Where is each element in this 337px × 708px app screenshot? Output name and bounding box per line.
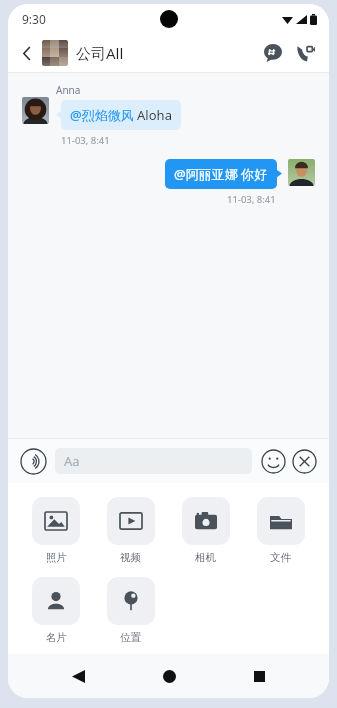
staticText: Anna <box>56 83 81 97</box>
button[interactable]: 相机 <box>177 497 234 564</box>
staticText: 公司All <box>76 43 124 63</box>
staticText: @阿丽亚娜 你好 <box>174 165 268 183</box>
button[interactable]: 位置 <box>102 577 159 644</box>
button[interactable]: Emoji <box>261 449 286 474</box>
button[interactable]: Aa <box>55 448 252 474</box>
staticText: 名片 <box>46 631 67 644</box>
staticText: Aa <box>64 452 80 470</box>
button[interactable]: Home <box>149 656 189 696</box>
staticText: 相机 <box>195 551 216 564</box>
button[interactable]: Close panel <box>292 449 317 474</box>
staticText: @烈焰微风 Aloha <box>70 106 172 124</box>
button[interactable]: 照片 <box>28 497 84 564</box>
staticText: 11-03, 8:41 <box>227 193 276 206</box>
staticText: 位置 <box>120 631 141 644</box>
staticText: 照片 <box>46 551 67 564</box>
button[interactable]: Recent apps <box>239 656 279 696</box>
staticText: 文件 <box>270 551 291 564</box>
button[interactable]: Channels <box>257 37 289 69</box>
button[interactable]: Back <box>58 656 98 696</box>
staticText: 11-03, 8:41 <box>61 134 110 147</box>
button[interactable]: Back <box>12 38 42 68</box>
button[interactable]: 文件 <box>252 497 309 564</box>
staticText: 视频 <box>120 551 141 564</box>
button[interactable]: Video call <box>289 37 321 69</box>
button[interactable]: Voice message <box>20 448 47 475</box>
button[interactable]: 视频 <box>102 497 159 564</box>
button[interactable]: @烈焰微风 Aloha <box>61 100 181 130</box>
button[interactable]: @阿丽亚娜 你好 <box>165 159 277 189</box>
button[interactable]: 名片 <box>28 577 84 644</box>
staticText: 9:30 <box>22 11 46 27</box>
